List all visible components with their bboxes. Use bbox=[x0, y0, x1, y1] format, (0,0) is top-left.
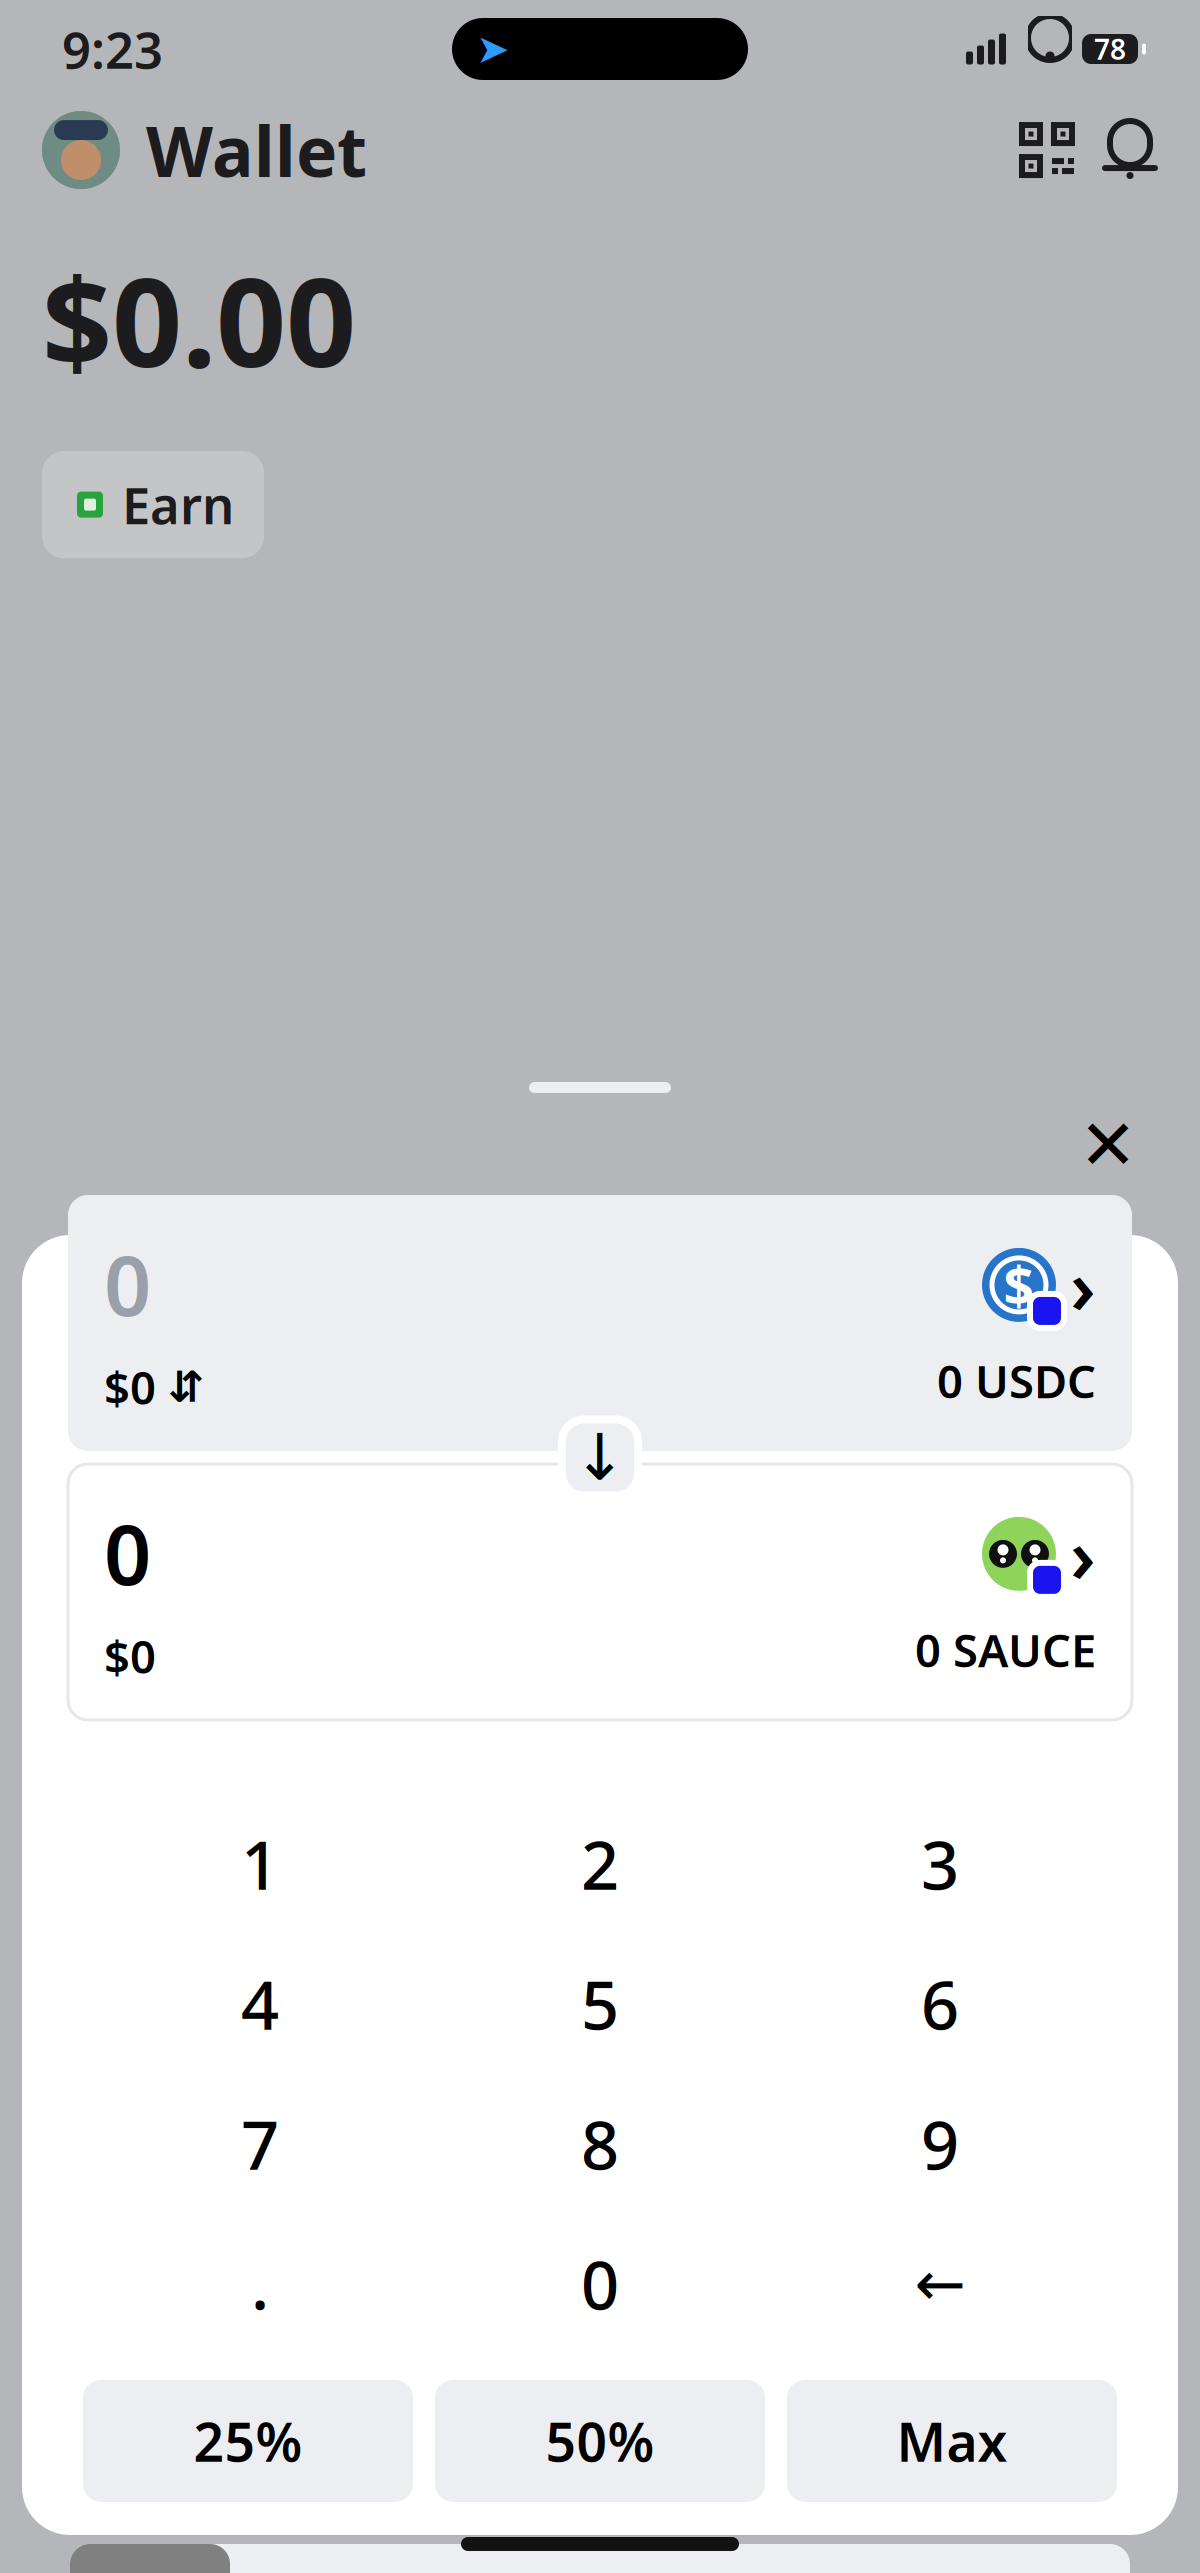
staticText: . bbox=[251, 2240, 269, 2328]
button[interactable]: 6 bbox=[770, 1934, 1110, 2074]
button[interactable]: › bbox=[915, 1504, 1096, 1680]
button[interactable]: 0 bbox=[430, 2214, 770, 2354]
button[interactable]: 4 bbox=[90, 1934, 430, 2074]
button[interactable]: 7 bbox=[90, 2074, 430, 2214]
button[interactable]: 25% bbox=[83, 2380, 413, 2502]
staticText: 1 bbox=[241, 1820, 279, 1908]
staticText: 78 bbox=[1094, 30, 1126, 68]
staticText: 50% bbox=[545, 2406, 654, 2476]
staticText: 25% bbox=[193, 2406, 302, 2476]
button[interactable]: Profile bbox=[42, 111, 120, 189]
button[interactable]: Notifications bbox=[1102, 120, 1158, 180]
button[interactable]: 8 bbox=[430, 2074, 770, 2214]
staticText: ➤ bbox=[476, 26, 510, 72]
button[interactable]: 3 bbox=[770, 1794, 1110, 1934]
staticText: 0 bbox=[104, 1498, 151, 1608]
staticText: 0 SAUCE bbox=[915, 1619, 1096, 1680]
staticText: Earn bbox=[122, 471, 234, 538]
staticText: $0 bbox=[104, 1626, 156, 1686]
staticText: 0 USDC bbox=[937, 1350, 1096, 1411]
staticText: 4 bbox=[241, 1960, 279, 2048]
staticText: 7 bbox=[241, 2100, 279, 2188]
staticText: 3 bbox=[921, 1820, 959, 1908]
button[interactable]: 2 bbox=[430, 1794, 770, 1934]
button[interactable]: Max bbox=[787, 2380, 1117, 2502]
staticText: 0 bbox=[581, 2240, 619, 2328]
staticText: › bbox=[1070, 1504, 1096, 1603]
staticText: ✕ bbox=[1079, 1106, 1137, 1184]
staticText: ⇵ bbox=[168, 1363, 204, 1411]
staticText: 5 bbox=[581, 1960, 619, 2048]
staticText: 9 bbox=[921, 2100, 959, 2188]
staticText: ↓ bbox=[573, 1421, 627, 1494]
staticText: 6 bbox=[921, 1960, 959, 2048]
staticText: $ bbox=[1003, 1249, 1034, 1320]
button[interactable]: Earn bbox=[42, 451, 264, 558]
button[interactable]: ← bbox=[770, 2214, 1110, 2354]
staticText: 2 bbox=[581, 1820, 619, 1908]
button[interactable]: Scan QR code bbox=[1018, 121, 1076, 179]
staticText: 9:23 bbox=[62, 15, 163, 83]
button[interactable]: Swap direction bbox=[558, 1415, 642, 1499]
button[interactable]: 5 bbox=[430, 1934, 770, 2074]
button[interactable]: . bbox=[90, 2214, 430, 2354]
button[interactable]: Continue bbox=[70, 2544, 230, 2573]
button[interactable]: 9 bbox=[770, 2074, 1110, 2214]
staticText: $0.00 bbox=[42, 238, 356, 401]
staticText: ← bbox=[914, 2249, 965, 2319]
staticText: Max bbox=[896, 2406, 1007, 2476]
staticText: $0 bbox=[104, 1357, 156, 1417]
staticText: 8 bbox=[581, 2100, 619, 2188]
staticText: › bbox=[1070, 1235, 1096, 1334]
staticText: Wallet bbox=[146, 104, 367, 196]
button[interactable]: 50% bbox=[435, 2380, 765, 2502]
staticText: 0 bbox=[104, 1229, 151, 1339]
button[interactable]: Close bbox=[1066, 1103, 1150, 1187]
button[interactable]: 1 bbox=[90, 1794, 430, 1934]
button[interactable]: $ bbox=[937, 1235, 1096, 1411]
